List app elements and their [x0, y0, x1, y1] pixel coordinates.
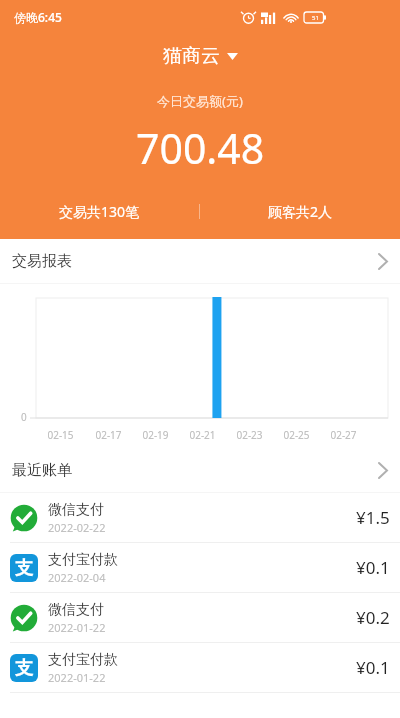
staticText: 02-17	[95, 428, 122, 442]
staticText: 支付宝付款	[48, 551, 118, 569]
staticText: 顾客共2人	[268, 202, 333, 221]
staticText: 支	[15, 557, 33, 580]
button[interactable]: 交易共130笔	[0, 196, 199, 227]
staticText: 交易报表	[12, 252, 72, 271]
staticText: ¥0.1	[356, 656, 390, 679]
staticText: 0	[21, 410, 27, 424]
button[interactable]: 最近账单	[0, 448, 400, 492]
staticText: 2022-01-22	[48, 620, 106, 635]
staticText: ¥0.2	[356, 606, 390, 629]
staticText: 02-23	[236, 428, 263, 442]
staticText: 02-21	[189, 428, 216, 442]
staticText: ¥0.1	[356, 556, 390, 579]
staticText: 微信支付	[48, 501, 104, 519]
staticText: 最近账单	[12, 461, 72, 480]
staticText: 傍晚6:45	[14, 9, 62, 25]
staticText: 支	[15, 657, 33, 680]
button[interactable]: 微信支付	[0, 493, 400, 542]
staticText: ¥1.5	[356, 506, 390, 529]
button[interactable]: 猫商云	[157, 42, 244, 70]
button[interactable]: 顾客共2人	[200, 196, 400, 227]
staticText: 02-19	[142, 428, 169, 442]
staticText: 2022-02-22	[48, 520, 106, 535]
staticText: 今日交易额(元)	[157, 92, 243, 110]
staticText: 支付宝付款	[48, 651, 118, 669]
staticText: 微信支付	[48, 601, 104, 619]
staticText: 2022-02-04	[48, 570, 106, 585]
staticText: 02-25	[283, 428, 310, 442]
other: 更多	[378, 462, 388, 479]
button[interactable]: 支	[0, 543, 400, 592]
staticText: 猫商云	[163, 44, 220, 68]
staticText: 2022-01-22	[48, 670, 106, 685]
staticText: 02-27	[330, 428, 357, 442]
staticText: 02-15	[47, 428, 74, 442]
button[interactable]: 微信支付	[0, 593, 400, 642]
other: 更多	[378, 253, 388, 270]
button[interactable]: 交易报表	[0, 239, 400, 283]
staticText: 700.48	[136, 120, 265, 176]
button[interactable]: 支	[0, 643, 400, 692]
staticText: 51	[312, 14, 319, 22]
staticText: 交易共130笔	[59, 202, 140, 221]
